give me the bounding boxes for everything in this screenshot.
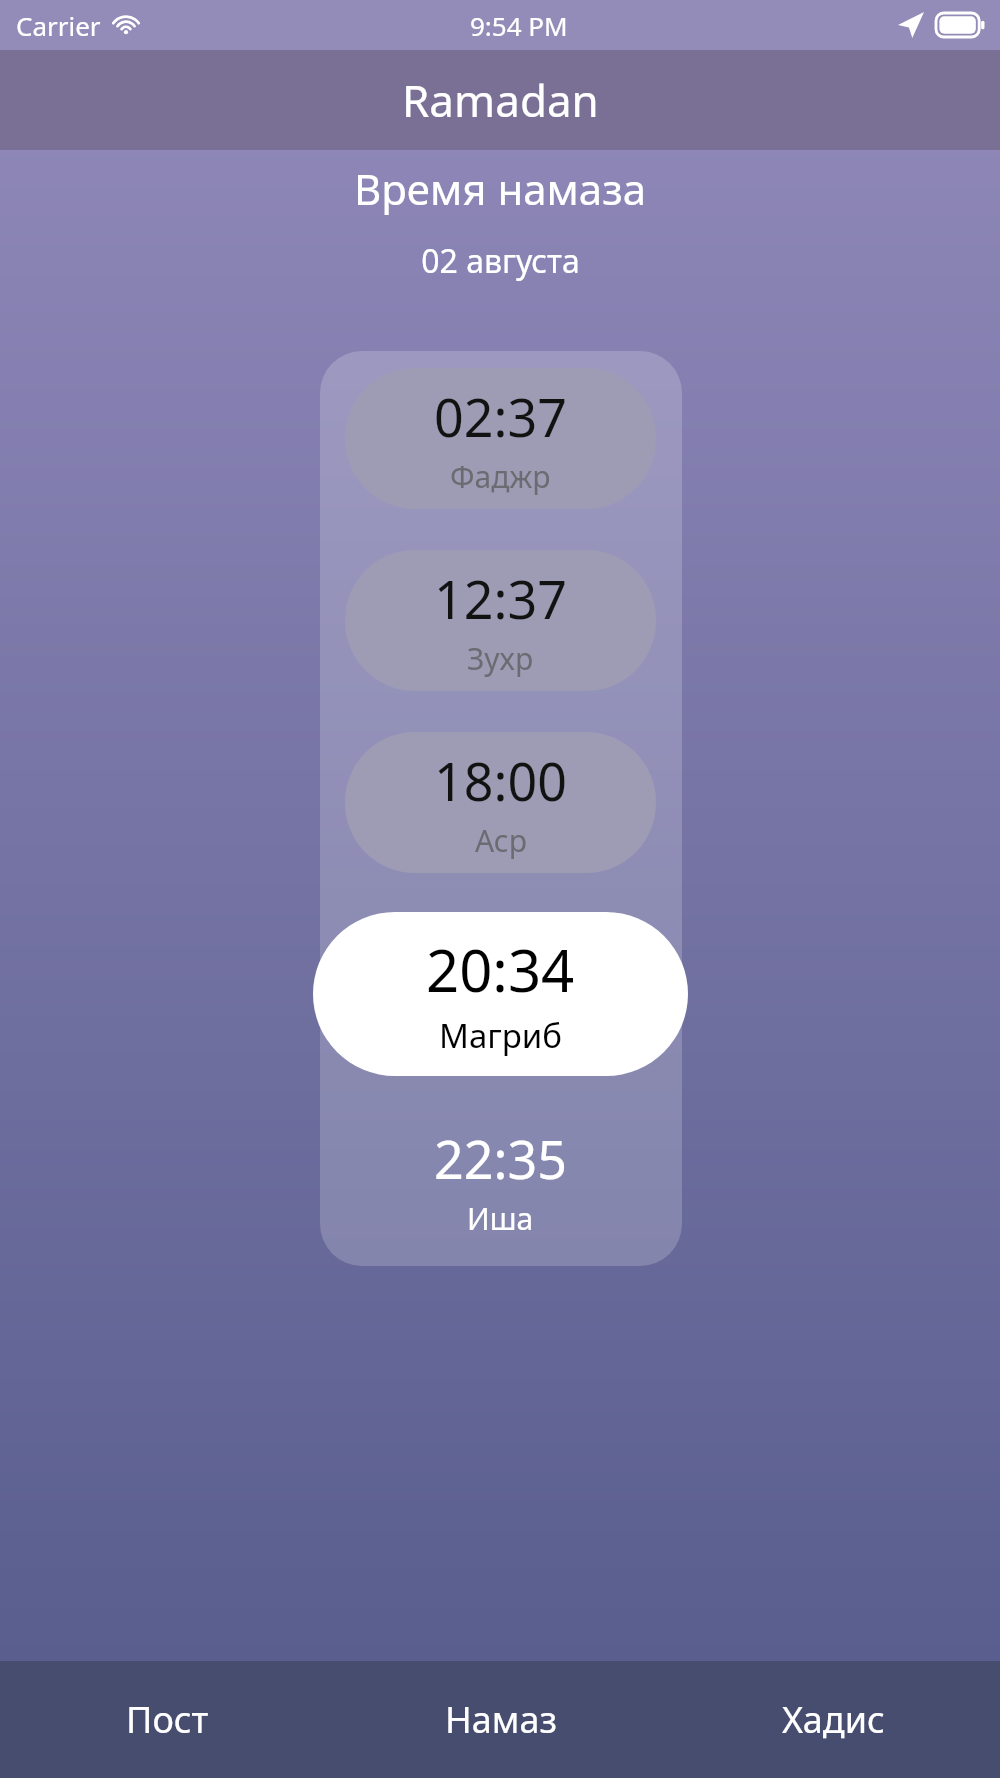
staticText: Время намаза bbox=[354, 160, 646, 217]
button[interactable]: Пост bbox=[0, 1661, 334, 1778]
staticText: 9:54 PM bbox=[470, 8, 568, 43]
staticText: Carrier bbox=[16, 8, 101, 43]
staticText: Намаз bbox=[445, 1695, 557, 1744]
staticText: 02:37 bbox=[434, 381, 567, 452]
button[interactable]: 12:37 bbox=[345, 550, 656, 691]
button[interactable]: Хадис bbox=[667, 1661, 1000, 1778]
staticText: Аср bbox=[475, 820, 527, 861]
staticText: Хадис bbox=[782, 1695, 885, 1744]
staticText: Фаджр bbox=[450, 456, 551, 497]
staticText: 02 августа bbox=[421, 239, 580, 283]
button[interactable]: 02:37 bbox=[345, 368, 656, 509]
staticText: 18:00 bbox=[434, 745, 567, 816]
button[interactable]: Намаз bbox=[334, 1661, 667, 1778]
button[interactable]: 18:00 bbox=[345, 732, 656, 873]
button[interactable]: 20:34 bbox=[313, 912, 688, 1076]
staticText: Зухр bbox=[467, 638, 534, 679]
staticText: Ramadan bbox=[402, 70, 599, 130]
staticText: Иша bbox=[467, 1198, 534, 1239]
staticText: 20:34 bbox=[426, 930, 575, 1009]
staticText: Магриб bbox=[439, 1013, 562, 1058]
staticText: Пост bbox=[126, 1695, 209, 1744]
staticText: 12:37 bbox=[434, 563, 567, 634]
button[interactable]: 22:35 bbox=[345, 1110, 656, 1251]
staticText: 22:35 bbox=[434, 1123, 567, 1194]
